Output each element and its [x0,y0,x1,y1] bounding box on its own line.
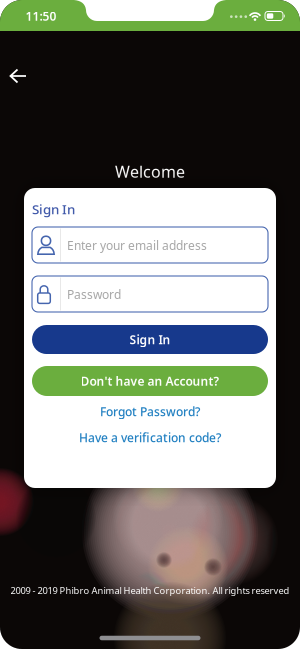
staticText: Enter your email address [67,237,207,253]
button[interactable]: Don't have an Account? [32,366,268,396]
button[interactable]: Sign In [32,325,268,354]
staticText: Password [67,286,121,302]
staticText: 2009 - 2019 Phibro Animal Health Corpora… [10,584,289,597]
staticText: Forgot Password? [100,403,200,419]
staticText: Welcome [115,161,185,182]
button[interactable]: Enter your email address [32,227,268,263]
button[interactable]: Forgot Password? [100,403,200,419]
staticText: Sign In [129,331,170,347]
button[interactable] [10,72,27,86]
staticText: Sign In [32,200,75,218]
button[interactable]: Have a verification code? [79,429,221,445]
button[interactable]: Password [32,276,268,312]
staticText: Don't have an Account? [80,373,219,389]
staticText: 11:50 [25,8,56,24]
staticText: Have a verification code? [79,429,221,445]
